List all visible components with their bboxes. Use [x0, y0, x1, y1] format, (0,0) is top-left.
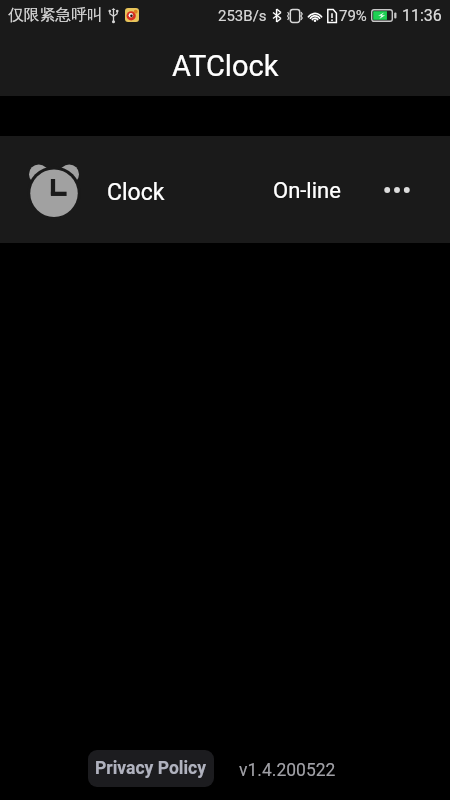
staticText: Clock: [107, 179, 165, 206]
staticText: 253B/s: [218, 7, 267, 25]
staticText: 仅限紧急呼叫: [8, 5, 103, 25]
button[interactable]: Privacy Policy: [88, 750, 214, 787]
staticText: On-line: [273, 178, 341, 204]
staticText: ATClock: [172, 49, 279, 83]
button[interactable]: More options: [375, 168, 419, 212]
button[interactable]: Clock: [0, 136, 450, 243]
staticText: 79%: [339, 7, 367, 25]
staticText: Privacy Policy: [95, 758, 207, 779]
staticText: 11:36: [402, 6, 442, 25]
staticText: v1.4.200522: [239, 760, 336, 781]
